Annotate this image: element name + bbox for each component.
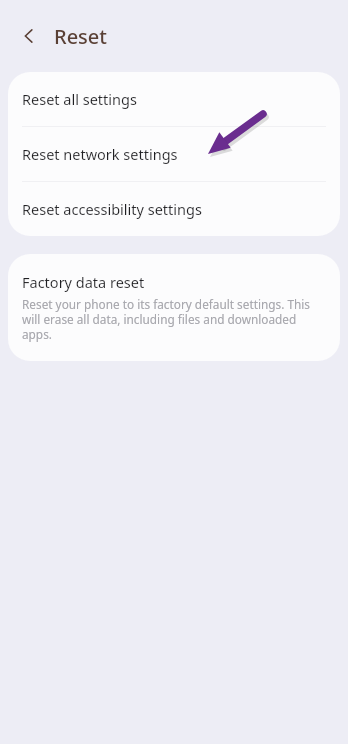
button[interactable]: Back: [14, 21, 44, 51]
staticText: Reset network settings: [22, 144, 178, 164]
staticText: Factory data reset: [22, 272, 145, 292]
button[interactable]: Reset network settings: [8, 127, 340, 181]
staticText: Reset accessibility settings: [22, 199, 202, 219]
staticText: Reset: [54, 23, 107, 50]
button[interactable]: Factory data reset: [8, 254, 340, 361]
staticText: Reset all settings: [22, 89, 137, 109]
button[interactable]: Reset accessibility settings: [8, 182, 340, 236]
button[interactable]: Reset all settings: [8, 72, 340, 126]
staticText: Reset your phone to its factory default …: [22, 296, 322, 343]
